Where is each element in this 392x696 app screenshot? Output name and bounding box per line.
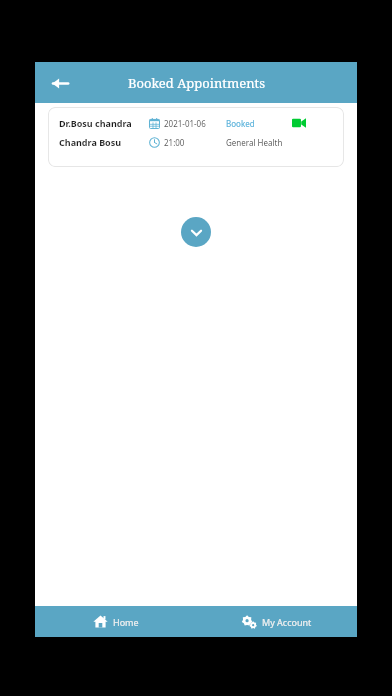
button[interactable]: My Account <box>196 606 357 637</box>
staticText: My Account <box>262 616 312 628</box>
button[interactable]: Expand appointment <box>181 217 211 247</box>
button[interactable]: Back <box>44 67 76 99</box>
staticText: Chandra Bosu <box>59 136 122 148</box>
button[interactable]: Home <box>35 606 196 637</box>
staticText: 21:00 <box>164 137 185 148</box>
staticText: General Health <box>226 137 283 148</box>
staticText: Home <box>113 616 139 628</box>
button[interactable]: Start video call <box>292 116 306 130</box>
button[interactable]: Dr.Bosu chandra <box>48 107 344 167</box>
staticText: Booked Appointments <box>128 74 265 92</box>
staticText: Booked <box>226 118 255 129</box>
staticText: Dr.Bosu chandra <box>59 117 132 129</box>
staticText: 2021-01-06 <box>164 118 206 129</box>
